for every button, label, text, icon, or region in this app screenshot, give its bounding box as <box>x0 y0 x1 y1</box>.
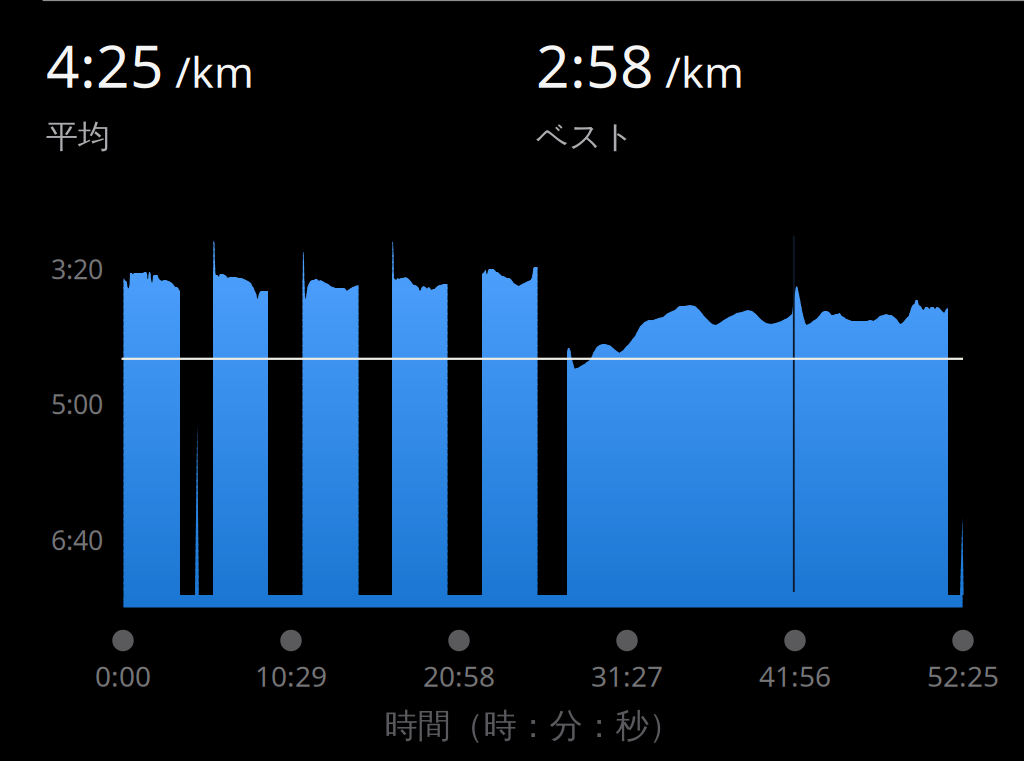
staticText: 2:58 <box>536 26 654 104</box>
staticText: 3:20 <box>51 251 103 287</box>
staticText: 4:25 <box>46 26 164 104</box>
staticText: 10:29 <box>255 657 327 695</box>
staticText: /km <box>665 43 744 99</box>
staticText: 20:58 <box>423 657 495 695</box>
staticText: 52:25 <box>927 657 999 695</box>
staticText: /km <box>175 43 254 99</box>
button[interactable]: 2:58 <box>536 26 856 146</box>
staticText: 平均 <box>46 117 110 156</box>
staticText: 31:27 <box>591 657 663 695</box>
staticText: 時間（時：分：秒） <box>384 705 681 746</box>
staticText: 41:56 <box>759 657 831 695</box>
staticText: 5:00 <box>51 386 103 422</box>
staticText: 0:00 <box>95 657 151 695</box>
staticText: 6:40 <box>51 522 103 558</box>
staticText: ベスト <box>536 117 635 156</box>
button[interactable]: 4:25 <box>46 26 366 146</box>
